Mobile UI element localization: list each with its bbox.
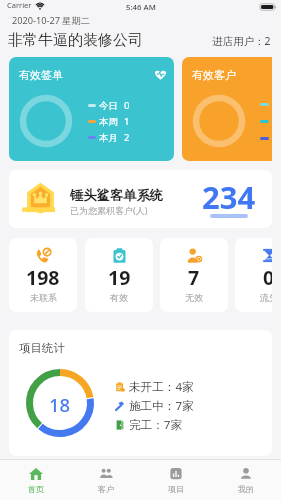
staticText: 0	[124, 99, 130, 112]
staticText: Carrier	[7, 0, 32, 10]
button[interactable]: 项目	[141, 463, 211, 498]
staticText: 项目统计	[19, 341, 65, 355]
staticText: 1	[124, 115, 130, 128]
staticText: 项目	[168, 484, 184, 494]
button[interactable]: 0	[235, 238, 272, 312]
staticText: 锤头鲨客单系统	[70, 187, 164, 204]
staticText: 0	[263, 264, 272, 291]
button[interactable]: 有效客户	[182, 57, 272, 161]
button[interactable]: 我的	[211, 463, 281, 498]
staticText: 首页	[28, 484, 44, 494]
staticText: 本月	[99, 132, 118, 144]
staticText: 本周	[99, 116, 118, 128]
staticText: 198	[26, 264, 60, 291]
staticText: 我的	[238, 484, 254, 494]
staticText: 7	[188, 264, 200, 291]
staticText: 2020-10-27 星期二	[12, 14, 90, 27]
staticText: 有效签单	[19, 68, 63, 82]
staticText: 今日	[99, 100, 118, 112]
staticText: 流失	[260, 292, 272, 303]
staticText: 234	[202, 176, 256, 218]
button[interactable]: 首页	[0, 463, 71, 498]
staticText: 无效	[185, 292, 203, 303]
staticText: 18	[49, 392, 71, 417]
staticText: 施工中：7家	[129, 398, 194, 414]
staticText: 有效	[110, 292, 128, 303]
staticText: 未开工：4家	[129, 379, 194, 395]
staticText: 进店用户：2	[212, 34, 271, 48]
other: 收藏	[155, 70, 166, 80]
button[interactable]: 7	[160, 238, 228, 312]
button[interactable]: 锤头鲨客单系统	[9, 170, 272, 228]
staticText: 客户	[98, 484, 114, 494]
staticText: 2	[124, 131, 130, 144]
staticText: 未联系	[30, 292, 57, 303]
staticText: 有效客户	[192, 68, 236, 82]
staticText: 5:46 AM	[126, 2, 156, 13]
staticText: 完工：7家	[129, 417, 183, 433]
staticText: 非常牛逼的装修公司	[8, 31, 143, 50]
button[interactable]: 19	[85, 238, 153, 312]
staticText: 19	[108, 264, 131, 291]
button[interactable]: 198	[9, 238, 77, 312]
staticText: 已为您累积客户(人)	[70, 204, 148, 216]
button[interactable]: 客户	[71, 463, 141, 498]
button[interactable]: 有效签单	[9, 57, 174, 161]
